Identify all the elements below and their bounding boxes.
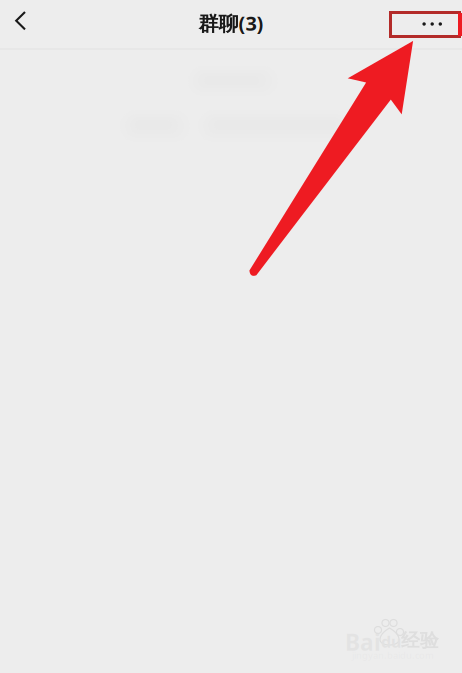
staticText: 群聊(3) [198,10,263,36]
staticText: du [381,631,401,652]
staticText: 经验 [401,629,439,652]
staticText: Bai [345,627,381,657]
button[interactable]: Back [0,0,54,48]
button[interactable]: More options [400,0,462,48]
